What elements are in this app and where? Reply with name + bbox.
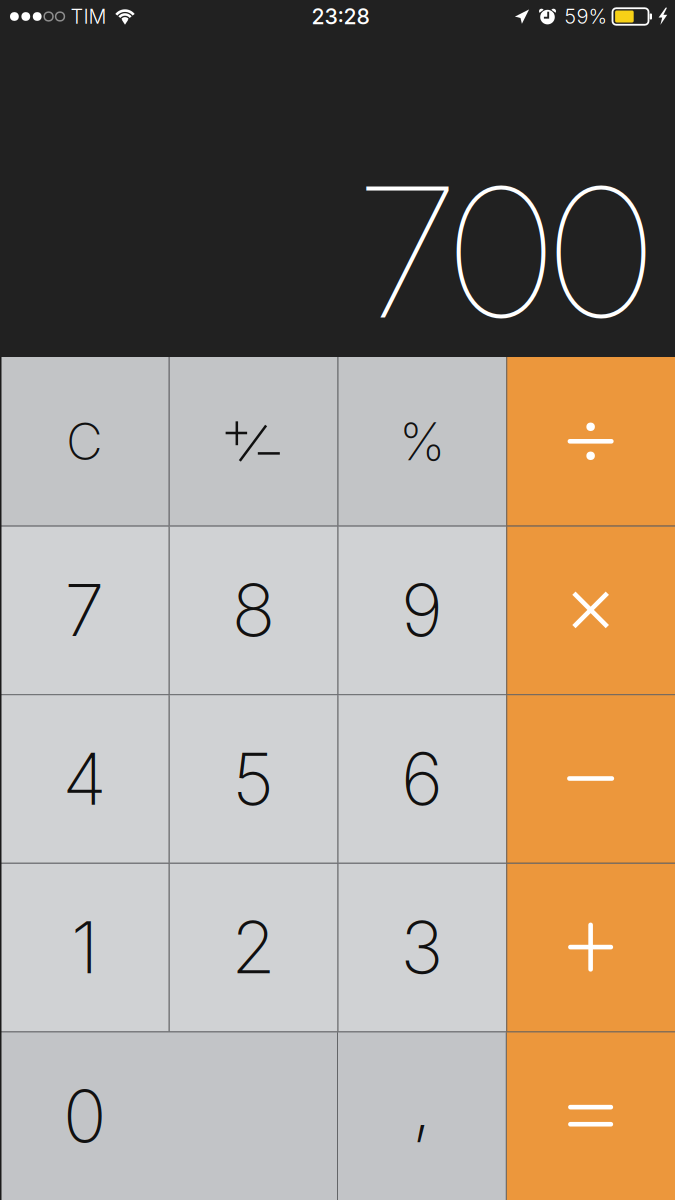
button[interactable]: 9 — [337, 526, 506, 694]
button[interactable]: 5 — [169, 694, 338, 863]
button[interactable]: Equals — [506, 1031, 675, 1200]
button[interactable]: Plus minus — [169, 357, 338, 526]
staticText: 59% — [564, 4, 607, 29]
staticText: 3 — [400, 903, 443, 991]
staticText: 9 — [401, 566, 443, 653]
button[interactable]: Add — [506, 863, 675, 1031]
button[interactable]: 4 — [0, 694, 169, 863]
button[interactable]: 7 — [0, 526, 169, 694]
staticText: , — [412, 1061, 432, 1148]
button[interactable] — [337, 357, 506, 526]
staticText: 5 — [232, 735, 274, 822]
button[interactable]: Divide — [506, 357, 675, 526]
staticText: 8 — [232, 566, 275, 653]
staticText: 2 — [231, 903, 275, 991]
button[interactable]: Subtract — [506, 694, 675, 863]
staticText: % — [399, 410, 445, 473]
staticText: 1 — [71, 903, 98, 991]
button[interactable]: Multiply — [506, 526, 675, 694]
staticText: C — [66, 411, 103, 472]
staticText: TIM — [70, 4, 106, 29]
staticText: 700 — [361, 143, 651, 361]
staticText: 23:28 — [311, 4, 369, 29]
staticText: 6 — [401, 735, 443, 822]
button[interactable]: 0 — [0, 1031, 337, 1200]
button[interactable]: 2 — [169, 863, 338, 1031]
button[interactable]: 1 — [0, 863, 169, 1031]
button[interactable]: 3 — [337, 863, 506, 1031]
staticText: 4 — [62, 735, 106, 822]
staticText: 7 — [64, 566, 104, 653]
button[interactable] — [337, 1031, 506, 1200]
button[interactable] — [0, 357, 169, 526]
staticText: 0 — [63, 1072, 106, 1159]
button[interactable]: 8 — [169, 526, 338, 694]
button[interactable]: 6 — [337, 694, 506, 863]
